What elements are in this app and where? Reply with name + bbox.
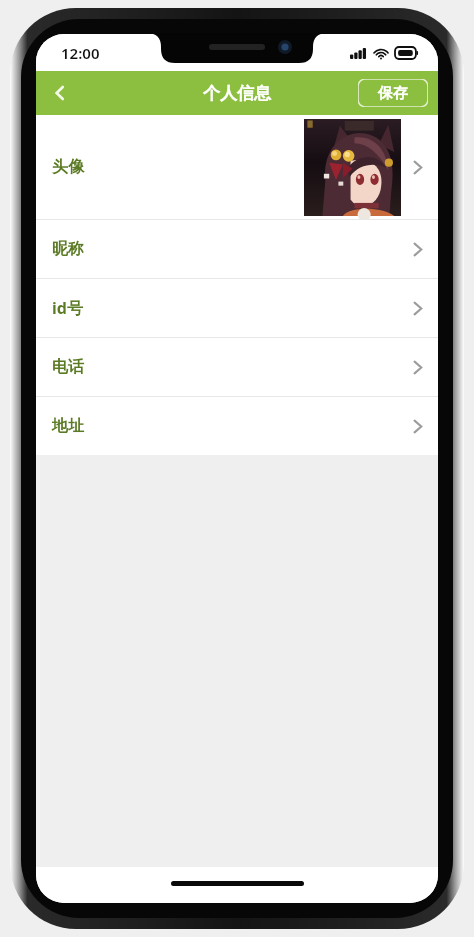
staticText: 电话: [52, 357, 84, 377]
staticText: 地址: [52, 416, 84, 436]
staticText: 头像: [52, 157, 84, 177]
staticText: 个人信息: [203, 83, 271, 104]
staticText: id号: [52, 297, 83, 319]
button[interactable]: Back: [36, 71, 84, 115]
staticText: 昵称: [52, 239, 84, 259]
button[interactable]: 电话: [36, 338, 438, 396]
staticText: 12:00: [61, 43, 100, 63]
button[interactable]: 头像: [36, 115, 438, 219]
button[interactable]: 地址: [36, 397, 438, 455]
button[interactable]: 昵称: [36, 220, 438, 278]
button[interactable]: 保存: [358, 79, 428, 107]
button[interactable]: id号: [36, 279, 438, 337]
staticText: 保存: [378, 84, 408, 103]
